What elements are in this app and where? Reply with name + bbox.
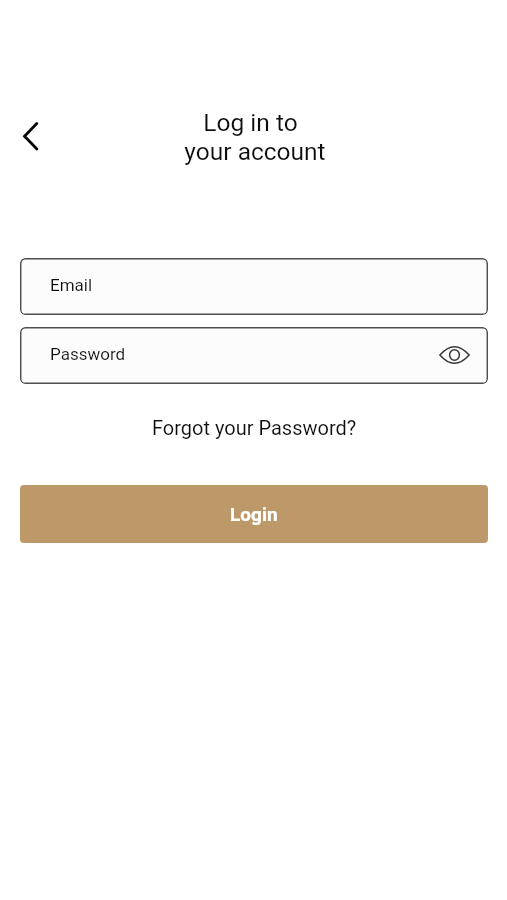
staticText: Log in to	[203, 108, 298, 137]
button[interactable]: Password	[20, 327, 488, 384]
button[interactable]: Forgot your Password?	[20, 384, 488, 471]
button[interactable]: Show password	[437, 338, 471, 372]
staticText: Password	[50, 344, 126, 364]
button[interactable]: Back	[8, 113, 52, 157]
staticText: Email	[50, 275, 93, 295]
staticText: your account	[184, 137, 326, 166]
button[interactable]: Email	[20, 258, 488, 315]
staticText: Forgot your Password?	[152, 416, 357, 439]
staticText: Login	[230, 503, 278, 525]
button[interactable]: Login	[20, 485, 488, 543]
